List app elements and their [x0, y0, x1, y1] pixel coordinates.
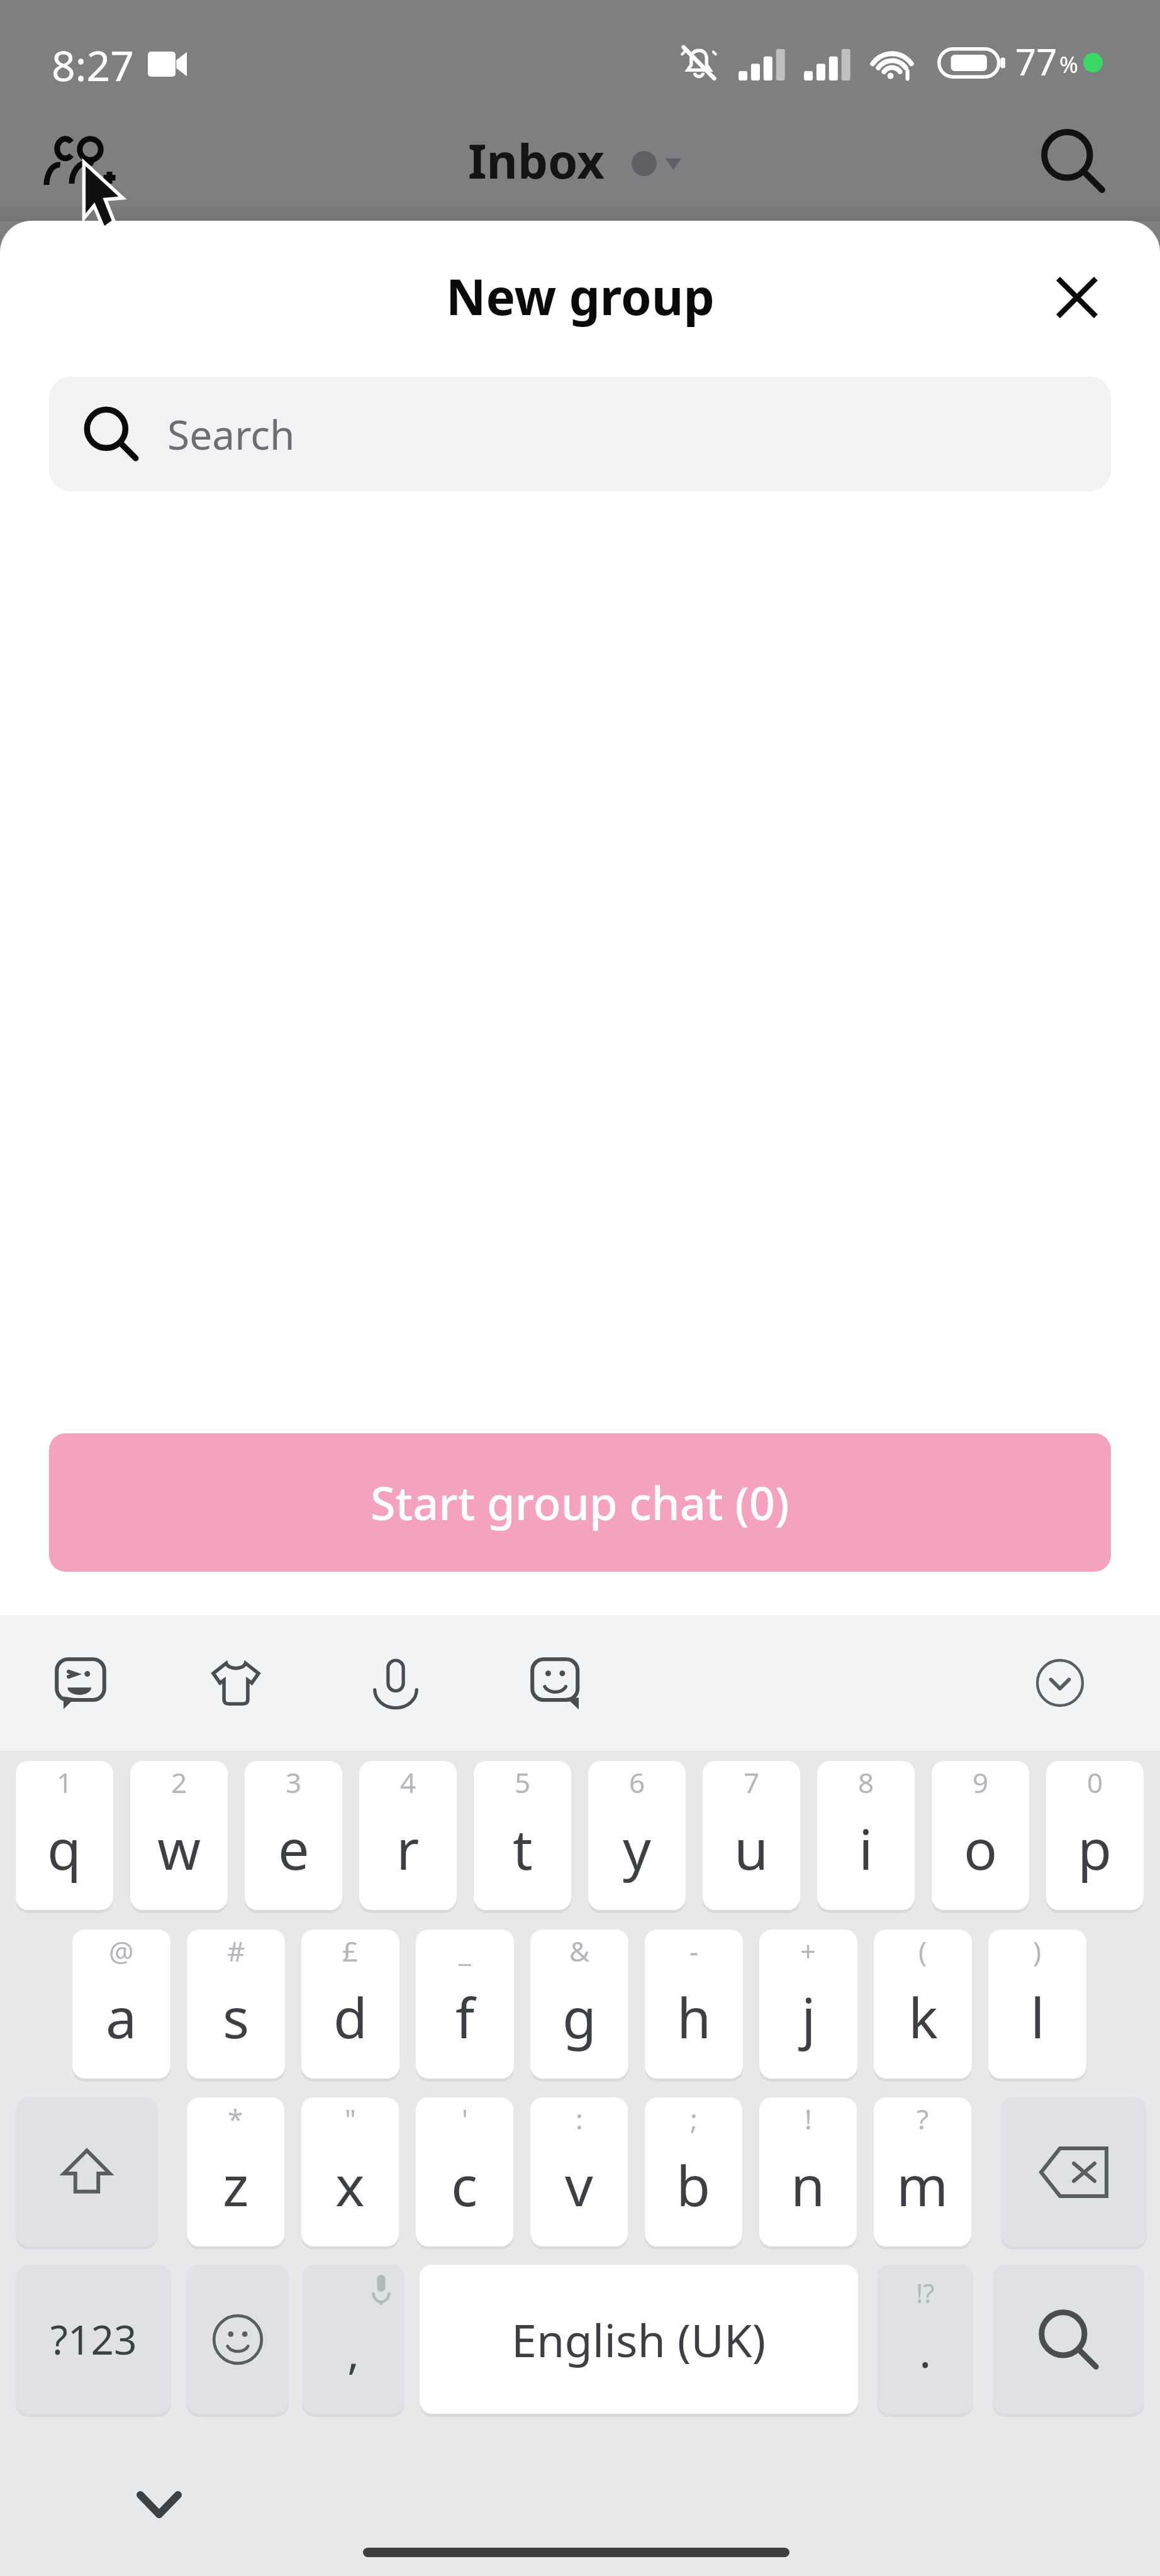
staticText: _	[459, 1932, 471, 1970]
staticText: 1	[57, 1763, 73, 1801]
button[interactable]: ?	[874, 2097, 971, 2246]
button[interactable]: 1	[16, 1761, 113, 1910]
staticText: m	[896, 2147, 949, 2223]
staticText: z	[223, 2147, 249, 2223]
staticText: 0	[1087, 1763, 1103, 1801]
button[interactable]: !	[759, 2097, 857, 2246]
staticText: !?	[916, 2275, 935, 2311]
button[interactable]: Shift	[16, 2097, 157, 2246]
button[interactable]: 7	[703, 1761, 800, 1910]
button[interactable]: @	[72, 1929, 170, 2079]
staticText: u	[734, 1811, 769, 1886]
staticText: k	[908, 1979, 938, 2055]
button[interactable]: Emoji	[186, 2265, 289, 2414]
button[interactable]: Collapse keyboard	[1018, 1642, 1101, 1724]
button[interactable]: )	[988, 1929, 1086, 2079]
button[interactable]: 0	[1046, 1761, 1144, 1910]
staticText: "	[345, 2100, 356, 2138]
button[interactable]: 3	[245, 1761, 342, 1910]
staticText: q	[47, 1811, 82, 1886]
button[interactable]: Search	[1027, 114, 1120, 208]
button[interactable]: "	[301, 2097, 399, 2246]
staticText: +	[800, 1932, 817, 1970]
button[interactable]: Symbols	[16, 2265, 171, 2414]
button[interactable]: &	[530, 1929, 628, 2079]
staticText: 8	[858, 1763, 874, 1801]
staticText: w	[157, 1811, 201, 1886]
button[interactable]: 2	[130, 1761, 228, 1910]
staticText: ?	[917, 2100, 929, 2138]
staticText: 7	[744, 1763, 760, 1801]
staticText: New group	[446, 263, 715, 330]
staticText: c	[451, 2147, 478, 2223]
staticText: h	[677, 1979, 711, 2055]
button[interactable]: Search	[993, 2265, 1144, 2414]
staticText: ,	[347, 2321, 360, 2382]
staticText: 2	[171, 1763, 187, 1801]
button[interactable]: #	[187, 1929, 285, 2079]
staticText: b	[676, 2147, 711, 2223]
staticText: 6	[629, 1763, 645, 1801]
staticText: @	[109, 1932, 134, 1970]
staticText: #	[227, 1932, 245, 1970]
button[interactable]: Comma	[302, 2265, 404, 2414]
button[interactable]: £	[301, 1929, 399, 2079]
button[interactable]: Voice input	[354, 1642, 437, 1724]
button[interactable]: _	[416, 1929, 514, 2079]
button[interactable]: 9	[932, 1761, 1029, 1910]
button[interactable]: *	[187, 2097, 284, 2246]
button[interactable]: English (UK)	[420, 2265, 858, 2414]
staticText: )	[1033, 1932, 1042, 1970]
staticText: n	[791, 2147, 825, 2223]
staticText: Start group chat (0)	[371, 1472, 789, 1533]
button[interactable]: +	[759, 1929, 857, 2079]
staticText: i	[859, 1811, 873, 1886]
staticText: %	[1059, 49, 1078, 80]
staticText: '	[462, 2100, 468, 2138]
staticText: o	[964, 1811, 998, 1886]
staticText: s	[223, 1979, 250, 2055]
staticText: g	[562, 1979, 597, 2055]
button[interactable]: Emoji	[515, 1642, 598, 1724]
button[interactable]: 5	[474, 1761, 571, 1910]
staticText: l	[1030, 1979, 1045, 2055]
button[interactable]: Stickers	[39, 1642, 122, 1724]
button[interactable]: -	[645, 1929, 743, 2079]
button[interactable]: 8	[817, 1761, 915, 1910]
staticText: 8:27	[52, 36, 134, 93]
staticText: e	[278, 1811, 310, 1886]
button[interactable]: Backspace	[1001, 2097, 1147, 2246]
button[interactable]: :	[530, 2097, 628, 2246]
staticText: j	[801, 1979, 816, 2055]
staticText: !	[805, 2100, 812, 2138]
staticText: Search	[167, 407, 295, 462]
button[interactable]: Period	[877, 2265, 973, 2414]
staticText: -	[689, 1932, 699, 1970]
button[interactable]: Start group chat (0)	[49, 1433, 1111, 1572]
button[interactable]: New group	[35, 114, 128, 208]
staticText: (	[918, 1932, 927, 1970]
staticText: a	[106, 1979, 137, 2055]
staticText: ?123	[50, 2312, 137, 2367]
staticText: *	[228, 2100, 243, 2138]
staticText: ;	[690, 2100, 698, 2138]
staticText: Inbox	[468, 128, 605, 193]
button[interactable]: 4	[359, 1761, 457, 1910]
button[interactable]: Hide keyboard	[121, 2467, 197, 2542]
staticText: v	[565, 2147, 593, 2223]
staticText: 3	[286, 1763, 302, 1801]
button[interactable]: (	[874, 1929, 972, 2079]
staticText: 5	[515, 1763, 531, 1801]
button[interactable]: 6	[588, 1761, 686, 1910]
button[interactable]: ;	[645, 2097, 742, 2246]
staticText: t	[513, 1811, 533, 1886]
button[interactable]: Search	[49, 377, 1111, 491]
button[interactable]: '	[416, 2097, 513, 2246]
staticText: f	[455, 1979, 475, 2055]
button[interactable]: Close	[1036, 257, 1118, 338]
button[interactable]: Themes	[194, 1642, 277, 1724]
staticText: 4	[400, 1763, 416, 1801]
staticText: English (UK)	[511, 2309, 766, 2370]
staticText: x	[335, 2147, 365, 2223]
staticText: 9	[973, 1763, 989, 1801]
